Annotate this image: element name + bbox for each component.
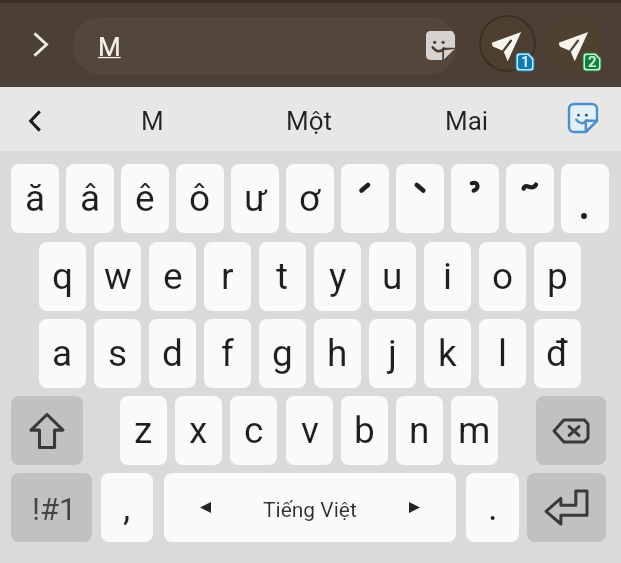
button[interactable]: Mai (397, 87, 537, 151)
button[interactable]: Send with SIM 1 (479, 15, 536, 72)
staticText: k (438, 332, 457, 375)
button[interactable]: s (94, 319, 141, 388)
button[interactable]: Acute tone (341, 164, 389, 233)
button[interactable]: r (204, 242, 251, 311)
staticText: . (488, 486, 498, 529)
button[interactable]: u (369, 242, 416, 311)
button[interactable]: ă (11, 164, 59, 233)
staticText: z (134, 409, 153, 452)
staticText: g (272, 332, 293, 375)
staticText: e (163, 255, 183, 298)
button[interactable]: Một (239, 87, 379, 151)
staticText: u (382, 255, 403, 298)
staticText: m (458, 409, 491, 452)
button[interactable]: . (466, 473, 519, 542)
button[interactable]: Enter (527, 473, 606, 542)
button[interactable]: w (94, 242, 141, 311)
button[interactable]: đ (534, 319, 581, 388)
button[interactable]: Expand toolbar (20, 24, 60, 64)
staticText: â (80, 177, 101, 220)
staticText: t (276, 255, 289, 298)
button[interactable]: c (230, 396, 277, 465)
button[interactable]: z (120, 396, 167, 465)
staticText: Mai (445, 106, 489, 136)
button[interactable]: ư (231, 164, 279, 233)
staticText: q (52, 255, 74, 298)
staticText: Tiếng Việt (263, 498, 357, 523)
button[interactable]: Tiếng Việt (164, 473, 456, 542)
button[interactable]: y (314, 242, 361, 311)
staticText: l (498, 332, 507, 375)
button[interactable]: Symbols (11, 473, 92, 542)
staticText: M (98, 32, 121, 62)
button[interactable]: Hook tone (451, 164, 499, 233)
button[interactable]: k (424, 319, 471, 388)
staticText: f (221, 332, 234, 375)
staticText: , (123, 486, 131, 529)
staticText: b (354, 409, 375, 452)
button[interactable]: h (314, 319, 361, 388)
button[interactable]: j (369, 319, 416, 388)
button[interactable]: v (286, 396, 333, 465)
button[interactable]: p (534, 242, 581, 311)
staticText: ô (189, 177, 211, 220)
button[interactable]: i (424, 242, 471, 311)
staticText: n (409, 409, 430, 452)
staticText: 1 (521, 53, 530, 71)
button[interactable]: d (149, 319, 196, 388)
button[interactable]: x (175, 396, 222, 465)
button[interactable]: Stickers (419, 24, 457, 66)
staticText: ă (25, 177, 46, 220)
button[interactable]: Open stickers (562, 97, 604, 139)
button[interactable]: Shift (11, 396, 83, 465)
staticText: !#1 (32, 491, 77, 527)
staticText: d (162, 332, 183, 375)
staticText: ê (135, 177, 155, 220)
button[interactable]: Dot below tone (561, 164, 609, 233)
button[interactable]: f (204, 319, 251, 388)
button[interactable]: M (82, 87, 222, 151)
button[interactable]: l (479, 319, 526, 388)
button[interactable]: , (101, 473, 153, 542)
staticText: M (141, 106, 164, 136)
staticText: j (388, 332, 397, 375)
button[interactable]: t (259, 242, 306, 311)
staticText: r (221, 255, 234, 298)
staticText: h (327, 332, 348, 375)
button[interactable]: Previous suggestions (15, 101, 55, 141)
button[interactable]: o (479, 242, 526, 311)
staticText: y (329, 255, 347, 298)
staticText: Một (286, 106, 333, 136)
button[interactable]: ơ (286, 164, 334, 233)
button[interactable]: Backspace (536, 396, 606, 465)
staticText: i (443, 255, 452, 298)
button[interactable]: n (396, 396, 443, 465)
button[interactable]: e (149, 242, 196, 311)
button[interactable]: a (39, 319, 86, 388)
button[interactable]: Tilde tone (506, 164, 554, 233)
button[interactable]: g (259, 319, 306, 388)
button[interactable]: â (66, 164, 114, 233)
staticText: a (52, 332, 73, 375)
button[interactable]: M (73, 17, 457, 75)
button[interactable]: ê (121, 164, 169, 233)
staticText: v (301, 409, 319, 452)
staticText: o (492, 255, 514, 298)
staticText: 2 (588, 53, 597, 71)
button[interactable]: m (451, 396, 498, 465)
staticText: x (189, 409, 208, 452)
button[interactable]: q (39, 242, 86, 311)
button[interactable]: Grave tone (396, 164, 444, 233)
staticText: p (547, 255, 568, 298)
button[interactable]: b (341, 396, 388, 465)
staticText: c (244, 409, 264, 452)
staticText: ư (244, 177, 267, 220)
staticText: s (108, 332, 128, 375)
button[interactable]: ô (176, 164, 224, 233)
staticText: ơ (299, 177, 321, 220)
staticText: đ (546, 332, 569, 375)
button[interactable]: Send with SIM 2 (546, 15, 603, 72)
staticText: w (104, 255, 132, 298)
